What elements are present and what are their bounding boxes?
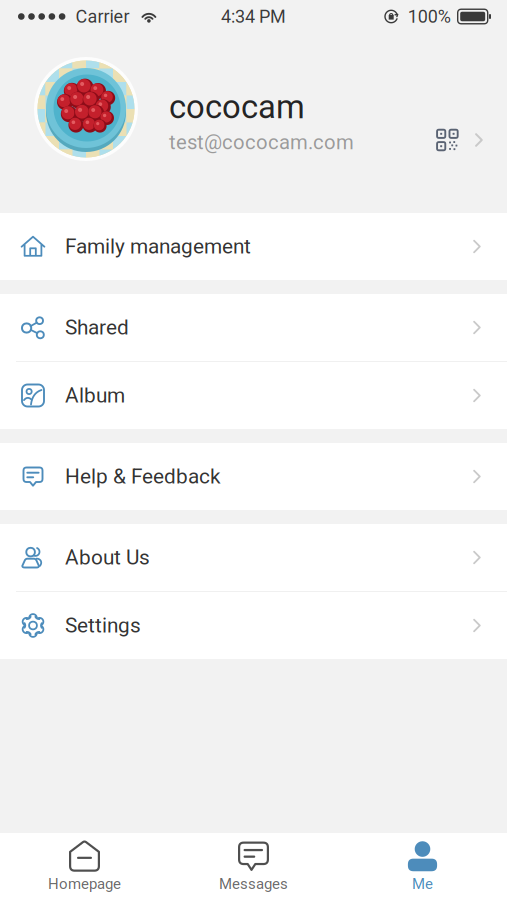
- button[interactable]: Homepage: [0, 833, 169, 900]
- staticText: Messages: [219, 875, 288, 893]
- button[interactable]: cococam: [0, 33, 507, 213]
- button[interactable]: Family management: [0, 213, 507, 280]
- button[interactable]: Settings: [0, 592, 507, 659]
- staticText: 4:34 PM: [221, 6, 286, 27]
- button[interactable]: Shared: [0, 294, 507, 361]
- button[interactable]: Messages: [169, 833, 338, 900]
- staticText: 100%: [408, 6, 451, 27]
- staticText: Shared: [65, 315, 129, 340]
- staticText: cococam: [169, 88, 305, 126]
- staticText: Help & Feedback: [65, 464, 221, 489]
- staticText: test@cococam.com: [169, 130, 354, 154]
- staticText: About Us: [65, 545, 150, 570]
- button[interactable]: Help & Feedback: [0, 443, 507, 510]
- staticText: Carrier: [75, 6, 129, 27]
- button[interactable]: Me: [338, 833, 507, 900]
- button[interactable]: About Us: [0, 524, 507, 591]
- button[interactable]: Album: [0, 362, 507, 429]
- staticText: Me: [412, 875, 433, 893]
- staticText: Settings: [65, 613, 141, 638]
- staticText: Family management: [65, 234, 251, 259]
- staticText: Album: [65, 383, 125, 408]
- staticText: Homepage: [48, 875, 121, 893]
